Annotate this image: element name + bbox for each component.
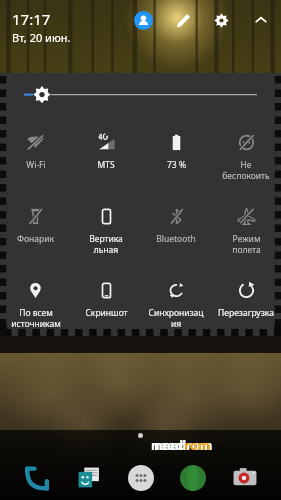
button[interactable]: User xyxy=(134,11,153,30)
button[interactable]: MTS xyxy=(71,119,141,193)
button[interactable]: Wi-Fi xyxy=(0,119,71,193)
button[interactable]: Phone xyxy=(10,456,63,500)
staticText: MTS xyxy=(97,159,115,171)
button[interactable]: Apps xyxy=(115,456,167,500)
button[interactable]: По всем источникам xyxy=(0,267,71,337)
button[interactable]: Settings xyxy=(209,8,233,32)
staticText: По всем источникам xyxy=(11,307,61,329)
button[interactable]: Синхронизац ия xyxy=(141,267,211,337)
staticText: Вт, 20 июн. xyxy=(12,30,71,45)
staticText: Скриншот xyxy=(85,307,128,319)
button[interactable]: Messages xyxy=(63,456,115,500)
button[interactable]: Вертика льная xyxy=(71,193,141,267)
staticText: Не беспокоить xyxy=(222,159,270,181)
staticText: Синхронизац ия xyxy=(148,307,204,329)
button[interactable]: Не беспокоить xyxy=(211,119,281,193)
staticText: Режим полета xyxy=(232,233,261,255)
button[interactable]: Скриншот xyxy=(71,267,141,337)
staticText: Перезагрузка xyxy=(218,307,274,319)
staticText: Wi-Fi xyxy=(26,159,46,171)
button[interactable]: Camera xyxy=(219,456,271,500)
button[interactable]: Browser xyxy=(167,456,219,500)
button[interactable]: Edit xyxy=(171,8,195,32)
staticText: Фонарик xyxy=(17,233,54,245)
button[interactable]: Bluetooth xyxy=(141,193,211,267)
staticText: rom xyxy=(184,436,211,454)
staticText: Вертика льная xyxy=(89,233,123,255)
button[interactable]: Режим полета xyxy=(211,193,281,267)
staticText: Bluetooth xyxy=(156,233,196,245)
button[interactable]: 73 % xyxy=(141,119,211,193)
staticText: needrom xyxy=(154,436,213,454)
button[interactable]: Collapse xyxy=(249,8,273,32)
staticText: 73 % xyxy=(167,159,186,171)
staticText: need xyxy=(151,436,184,454)
button[interactable]: Перезагрузка xyxy=(211,267,281,337)
staticText: 17:17 xyxy=(12,9,51,29)
button[interactable]: Фонарик xyxy=(0,193,71,267)
